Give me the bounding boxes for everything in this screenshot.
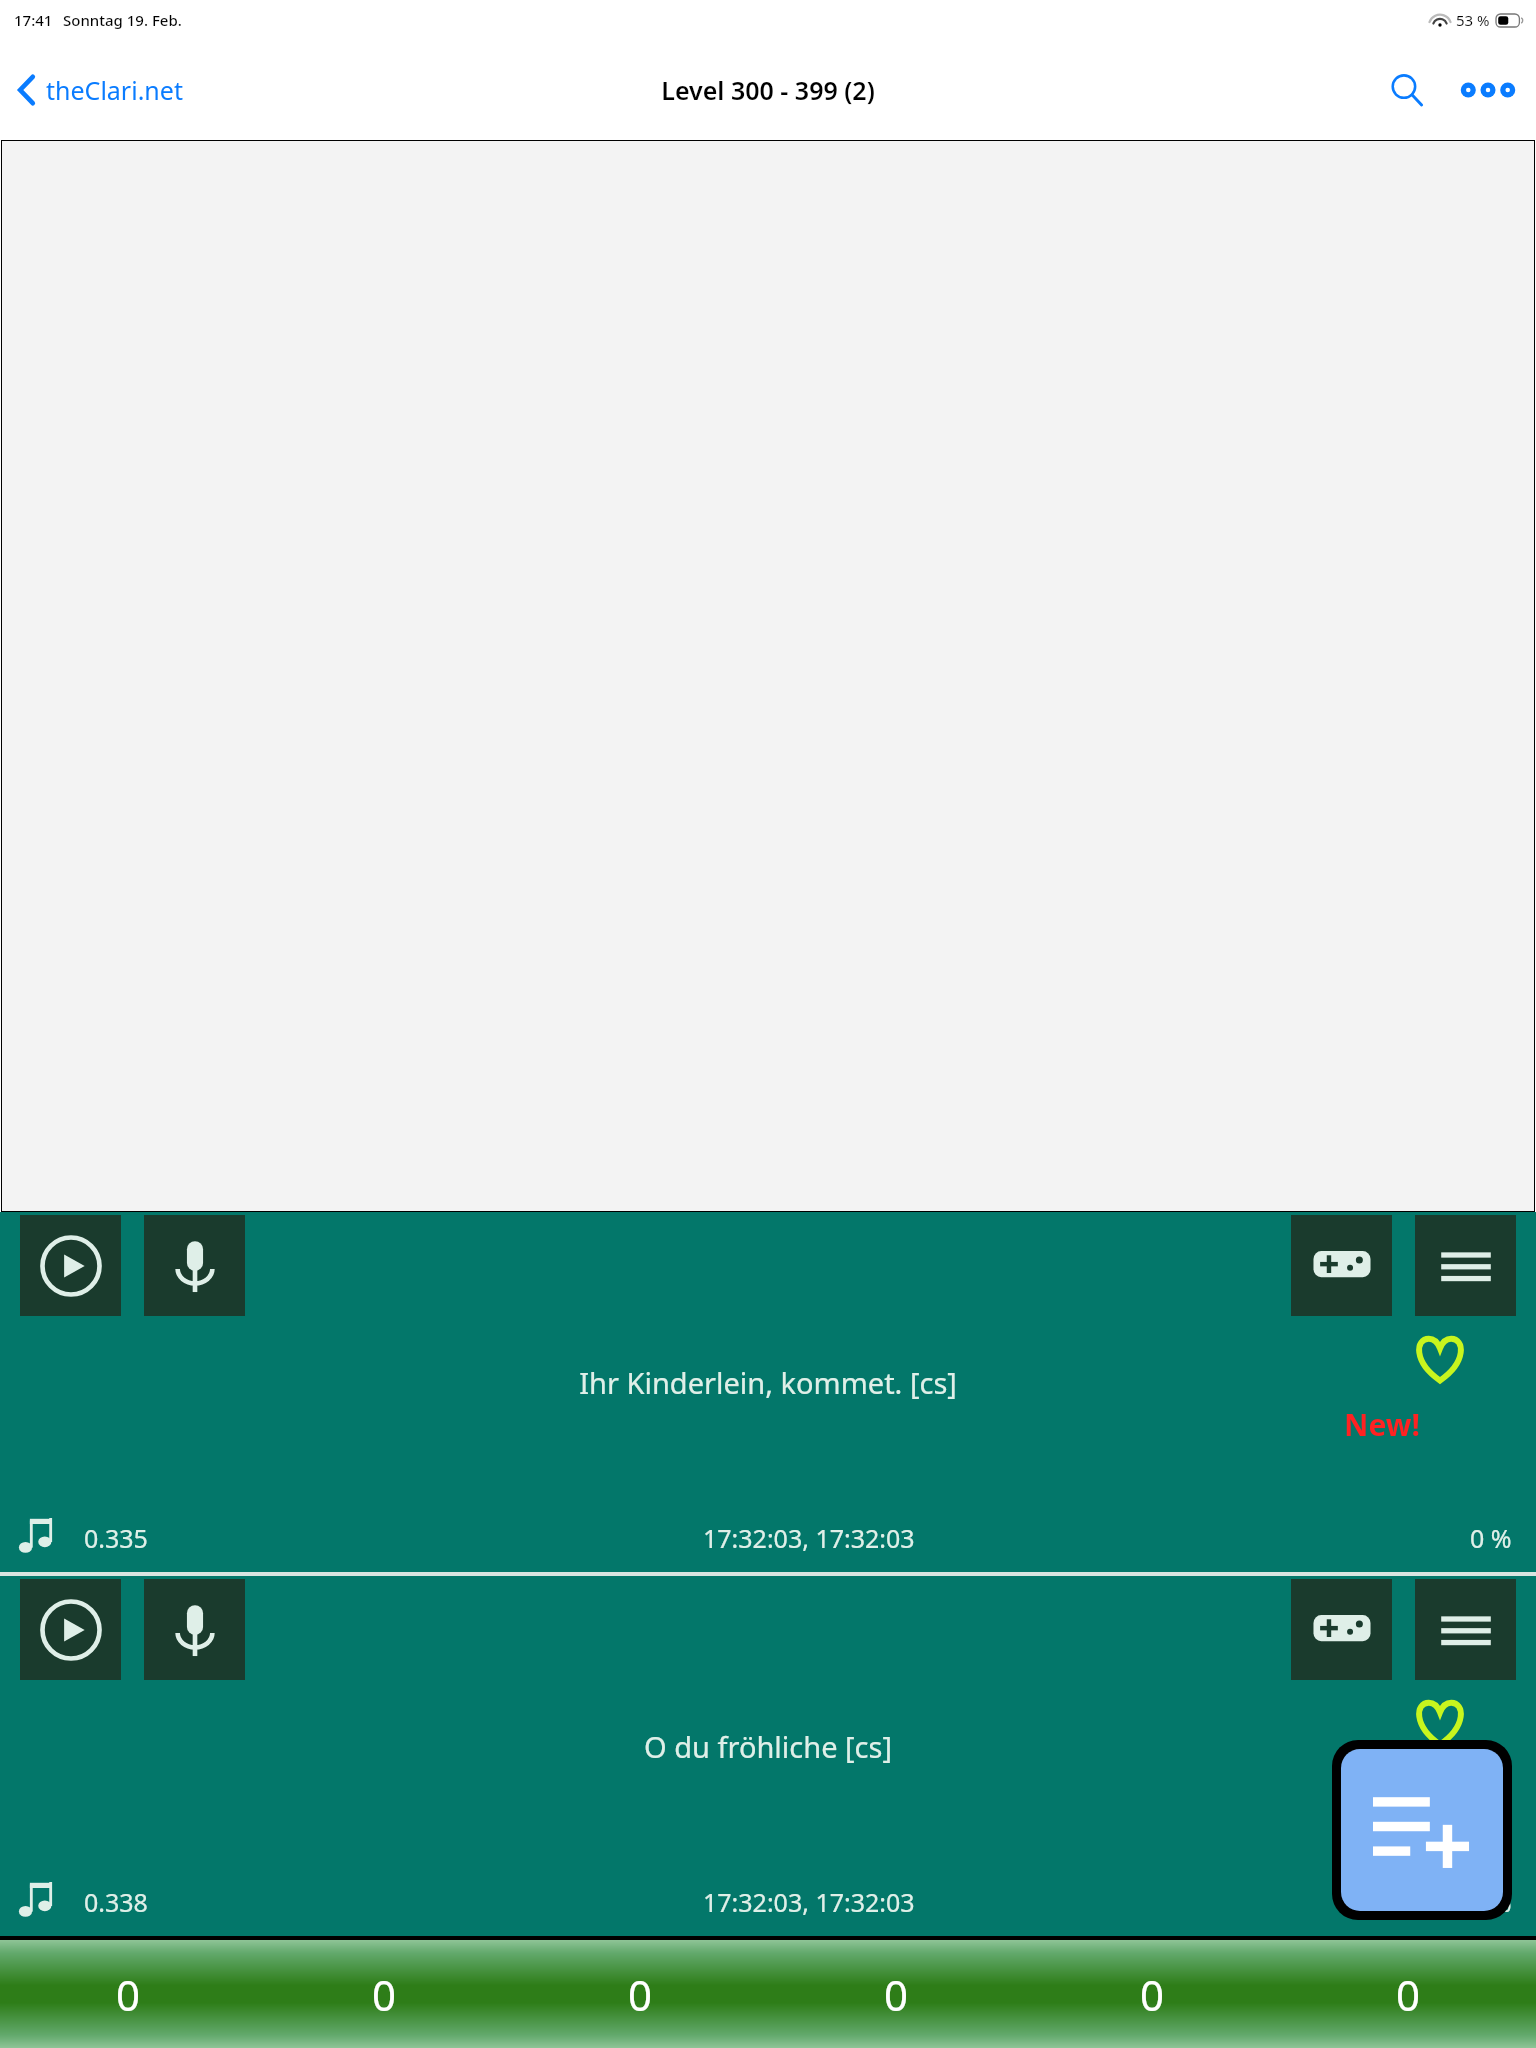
staticText: 53 %: [1456, 10, 1490, 30]
staticText: theClari.net: [46, 73, 183, 107]
staticText: New!: [1344, 1768, 1420, 1809]
staticText: 0: [1140, 1966, 1165, 2023]
button[interactable]: Favorite: [1412, 1334, 1468, 1382]
button[interactable]: Record: [144, 1215, 245, 1316]
button[interactable]: Favorite: [1412, 1698, 1468, 1746]
staticText: Level 300 - 399 (2): [661, 73, 875, 107]
staticText: 0: [628, 1966, 653, 2023]
staticText: 0.335: [84, 1521, 148, 1555]
button[interactable]: 0: [512, 1940, 768, 2048]
button[interactable]: Add to playlist: [1341, 1749, 1503, 1911]
staticText: 0: [116, 1966, 141, 2023]
staticText: 0: [884, 1966, 909, 2023]
button[interactable]: Play: [20, 1579, 121, 1680]
staticText: 17:41: [14, 10, 53, 30]
button[interactable]: theClari.net: [0, 65, 197, 115]
staticText: Sonntag 19. Feb.: [63, 10, 182, 30]
button[interactable]: 0: [1024, 1940, 1280, 2048]
staticText: 0 %: [1470, 1521, 1512, 1555]
staticText: New!: [1344, 1404, 1420, 1445]
staticText: 0 %: [1470, 1885, 1512, 1919]
staticText: O du fröhliche [cs]: [260, 1727, 1276, 1766]
button[interactable]: Menu: [1415, 1215, 1516, 1316]
button[interactable]: Search: [1376, 59, 1438, 121]
staticText: 0: [1396, 1966, 1421, 2023]
button[interactable]: More options: [1452, 59, 1524, 121]
button[interactable]: Record: [144, 1579, 245, 1680]
button[interactable]: Game: [1291, 1579, 1392, 1680]
staticText: Ihr Kinderlein, kommet. [cs]: [260, 1363, 1276, 1402]
button[interactable]: Play: [20, 1215, 121, 1316]
staticText: 17:32:03, 17:32:03: [703, 1885, 915, 1919]
button[interactable]: Menu: [1415, 1579, 1516, 1680]
button[interactable]: 0: [1280, 1940, 1536, 2048]
button[interactable]: 0: [768, 1940, 1024, 2048]
button[interactable]: 0: [256, 1940, 512, 2048]
staticText: 0: [372, 1966, 397, 2023]
staticText: 17:32:03, 17:32:03: [703, 1521, 915, 1555]
button[interactable]: 0: [0, 1940, 256, 2048]
staticText: 0.338: [84, 1885, 148, 1919]
button[interactable]: Game: [1291, 1215, 1392, 1316]
